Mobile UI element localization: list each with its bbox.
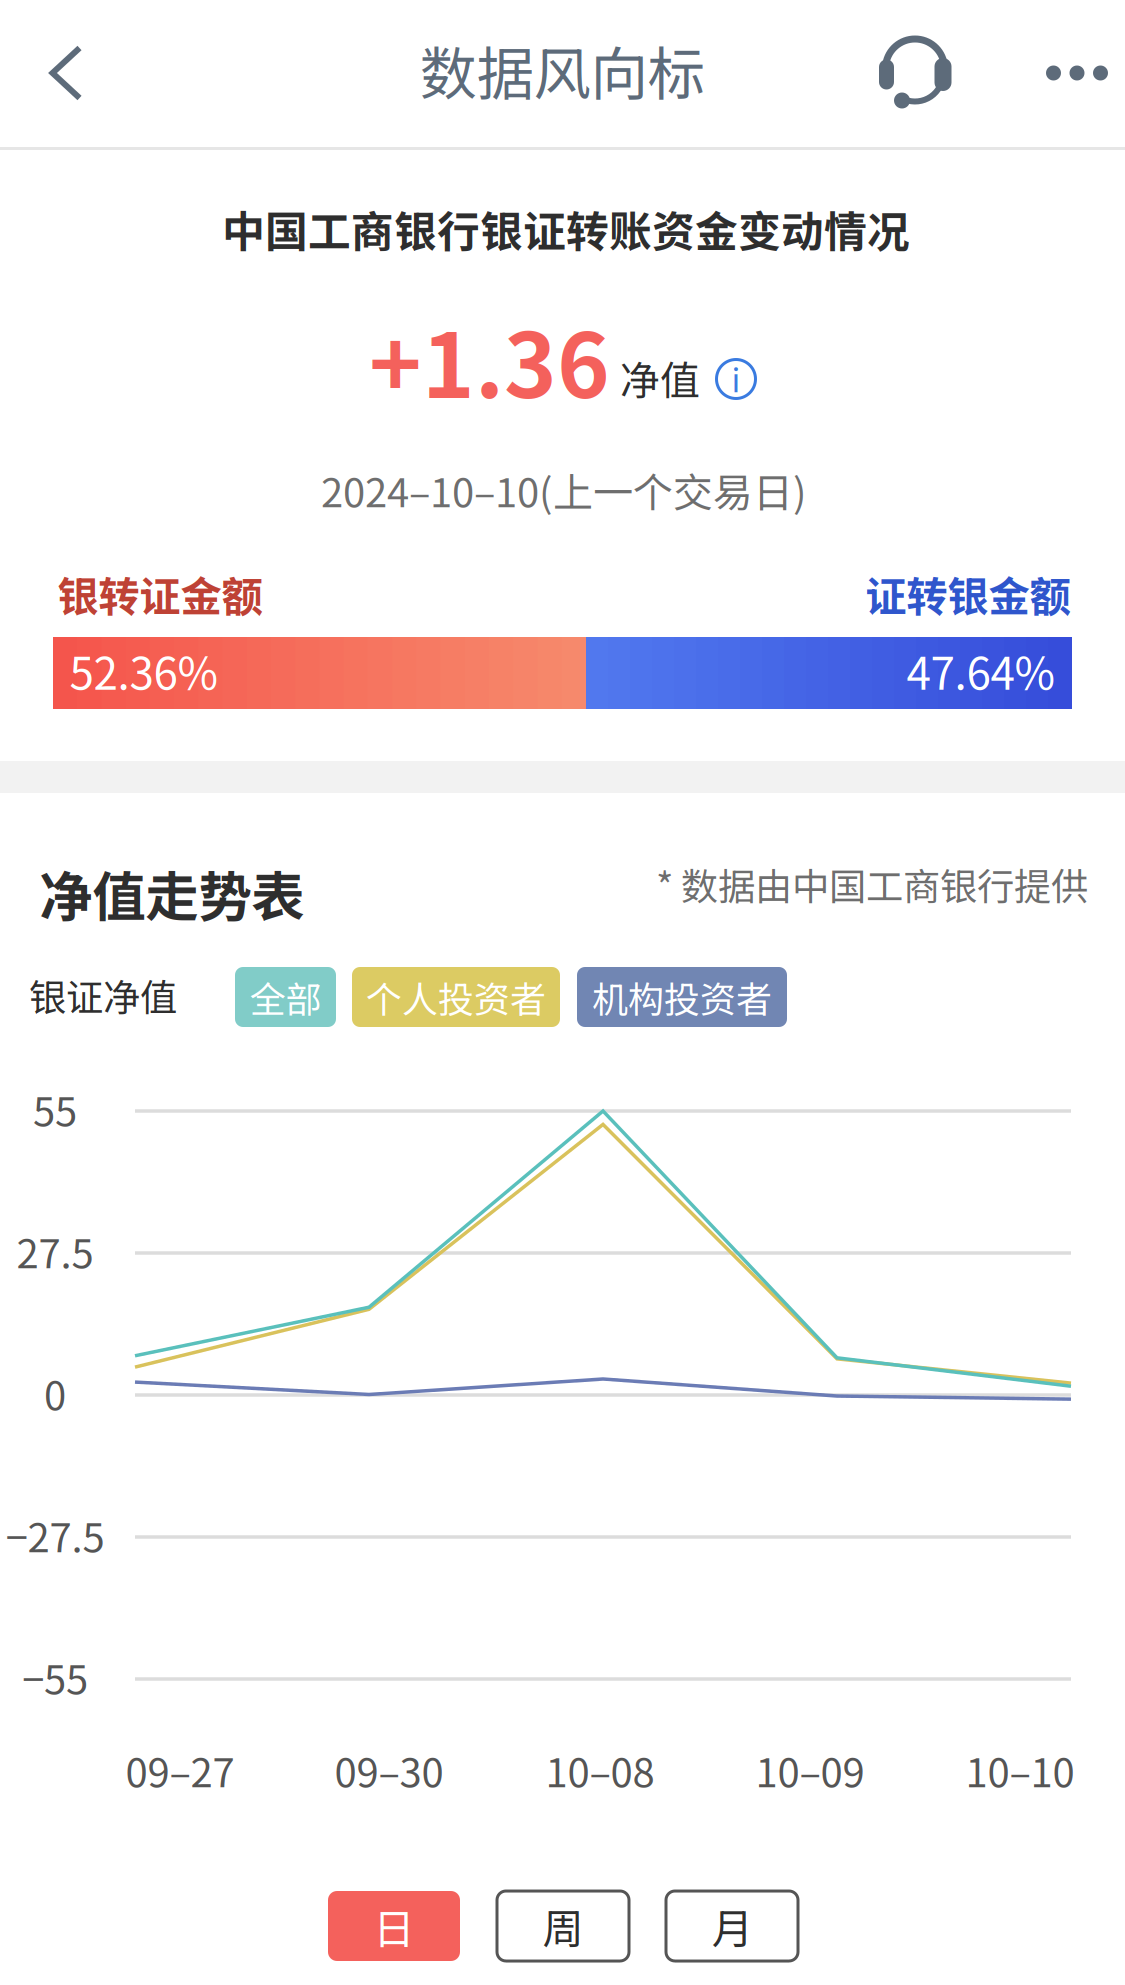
button[interactable]: 日 xyxy=(328,1891,460,1961)
staticText: * 数据由中国工商银行提供 xyxy=(656,857,1088,911)
button[interactable]: More xyxy=(1002,0,1125,146)
button[interactable]: 全部 xyxy=(235,967,336,1027)
staticText: 银转证金额 xyxy=(57,564,262,624)
staticText: i xyxy=(731,355,740,401)
staticText: −55 xyxy=(22,1648,88,1706)
staticText: 银证净值 xyxy=(29,968,177,1022)
button[interactable]: 月 xyxy=(666,1891,798,1961)
staticText: 27.5 xyxy=(16,1222,93,1280)
staticText: 中国工商银行银证转账资金变动情况 xyxy=(222,198,910,259)
staticText: 10–09 xyxy=(755,1741,864,1799)
staticText: 10–08 xyxy=(545,1741,654,1799)
staticText: 周 xyxy=(542,1896,583,1956)
staticText: 证转银金额 xyxy=(865,564,1070,624)
staticText: 10–10 xyxy=(965,1741,1074,1799)
button[interactable]: 机构投资者 xyxy=(577,967,787,1027)
staticText: 日 xyxy=(373,1896,414,1956)
staticText: 净值 xyxy=(620,349,700,407)
staticText: 09–30 xyxy=(334,1741,443,1799)
staticText: 净值走势表 xyxy=(39,854,304,932)
staticText: 09–27 xyxy=(125,1741,234,1799)
staticText: 2024–10–10(上一个交易日) xyxy=(321,461,807,519)
button[interactable]: Customer service xyxy=(855,0,975,146)
button[interactable]: 个人投资者 xyxy=(352,967,560,1027)
staticText: +1.36 xyxy=(369,294,610,424)
staticText: 55 xyxy=(33,1080,77,1138)
staticText: −27.5 xyxy=(5,1506,104,1564)
staticText: 个人投资者 xyxy=(366,971,546,1023)
staticText: 机构投资者 xyxy=(592,971,772,1023)
staticText: 数据风向标 xyxy=(419,28,704,111)
staticText: 52.36% xyxy=(69,639,218,702)
staticText: 全部 xyxy=(249,971,321,1023)
staticText: 月 xyxy=(711,1896,752,1956)
button[interactable]: 周 xyxy=(497,1891,629,1961)
staticText: 0 xyxy=(44,1364,66,1422)
button[interactable]: Back xyxy=(7,0,125,146)
staticText: 47.64% xyxy=(906,639,1055,702)
